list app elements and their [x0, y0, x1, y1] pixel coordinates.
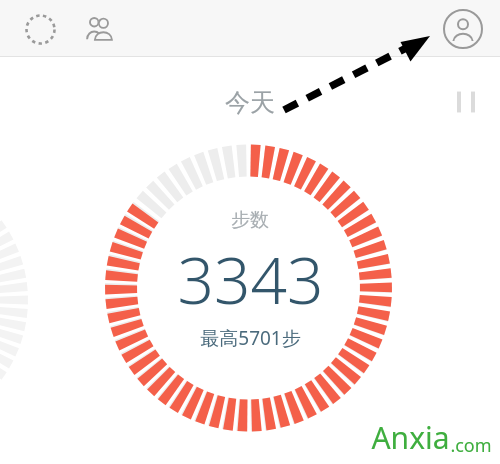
button[interactable]: Pause: [448, 84, 484, 120]
staticText: .com: [450, 433, 492, 458]
staticText: 3343: [177, 236, 324, 323]
button[interactable]: 今天: [215, 83, 285, 122]
staticText: Anxia: [371, 417, 450, 458]
staticText: 今天: [225, 87, 275, 118]
button[interactable]: Activity ring: [16, 5, 64, 53]
staticText: 步数: [231, 208, 269, 232]
button[interactable]: Profile: [436, 2, 490, 56]
staticText: 最高5701步: [200, 325, 301, 351]
button[interactable]: Friends: [76, 5, 124, 53]
